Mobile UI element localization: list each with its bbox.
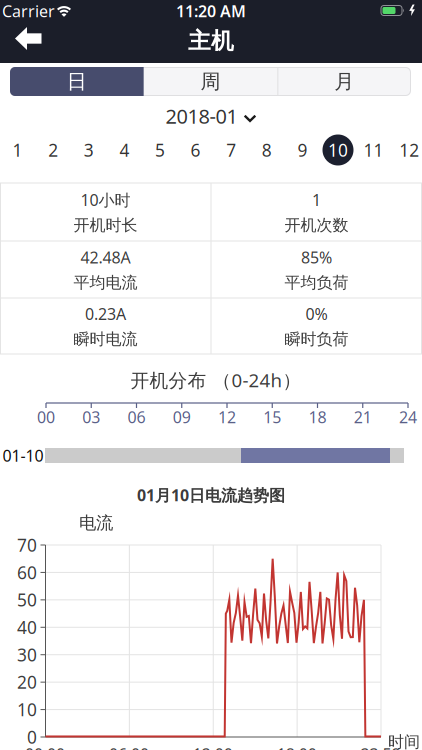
button[interactable]: 12 <box>392 133 422 167</box>
staticText: 11:20 AM <box>176 0 246 22</box>
staticText: 09 <box>173 406 191 428</box>
staticText: 12 <box>399 138 419 161</box>
button[interactable]: 7 <box>214 133 249 167</box>
button[interactable]: 3 <box>71 133 106 167</box>
staticText: 平均电流 <box>73 273 137 292</box>
staticText: 9 <box>297 138 307 161</box>
staticText: 0 <box>27 725 37 748</box>
staticText: 0% <box>305 303 327 324</box>
staticText: 06:00 <box>109 743 149 750</box>
button[interactable]: 1 <box>0 133 35 167</box>
button[interactable]: 周 <box>144 67 277 96</box>
staticText: 2 <box>48 138 58 161</box>
staticText: 主机 <box>188 27 234 55</box>
staticText: 日 <box>67 69 87 94</box>
staticText: 1 <box>312 189 321 210</box>
button[interactable]: 日 <box>10 67 144 96</box>
button[interactable]: 2 <box>36 133 71 167</box>
staticText: 平均负荷 <box>284 273 348 292</box>
staticText: 0.23A <box>85 303 126 324</box>
staticText: 85% <box>301 246 332 268</box>
staticText: 10 <box>328 138 348 161</box>
button[interactable]: 5 <box>142 133 178 167</box>
staticText: 开机分布 （0-24h） <box>130 368 301 392</box>
staticText: 30 <box>17 643 37 666</box>
staticText: 21 <box>354 406 372 428</box>
staticText: Carrier <box>2 0 55 22</box>
staticText: 开机次数 <box>284 215 348 235</box>
staticText: 4 <box>119 138 129 161</box>
staticText: 01月10日电流趋势图 <box>137 484 285 506</box>
staticText: 8 <box>262 138 272 161</box>
staticText: 15 <box>263 406 281 428</box>
staticText: 3 <box>84 138 94 161</box>
staticText: 00:00 <box>25 743 65 750</box>
staticText: 10 <box>17 698 37 721</box>
staticText: 01-10 <box>2 445 43 466</box>
staticText: 06 <box>127 406 145 428</box>
staticText: 12:00 <box>193 743 233 750</box>
staticText: 瞬时负荷 <box>284 329 348 349</box>
button[interactable]: 11 <box>356 133 391 167</box>
staticText: 月 <box>334 69 354 94</box>
button[interactable]: 9 <box>285 133 320 167</box>
staticText: 时间 <box>388 732 420 750</box>
button[interactable]: 6 <box>178 133 213 167</box>
staticText: 70 <box>17 533 37 556</box>
staticText: 18 <box>308 406 326 428</box>
button[interactable]: Back <box>0 0 56 63</box>
staticText: 11 <box>364 138 384 161</box>
staticText: 周 <box>200 69 220 94</box>
button[interactable]: 4 <box>107 133 142 167</box>
staticText: 42.48A <box>80 246 130 268</box>
staticText: 5 <box>155 138 165 161</box>
button[interactable]: 8 <box>249 133 284 167</box>
staticText: 60 <box>17 561 37 584</box>
button[interactable]: 2018-01 <box>165 104 256 128</box>
staticText: 20 <box>17 671 37 694</box>
staticText: 7 <box>226 138 236 161</box>
staticText: 23:59 <box>360 743 400 750</box>
staticText: 18:00 <box>277 743 317 750</box>
staticText: 电流 <box>79 512 113 534</box>
staticText: 03 <box>82 406 100 428</box>
staticText: 50 <box>17 588 37 611</box>
staticText: 24 <box>399 406 417 428</box>
staticText: 开机时长 <box>73 215 137 235</box>
staticText: 2018-01 <box>165 103 237 129</box>
staticText: 40 <box>17 616 37 639</box>
button[interactable]: 月 <box>277 67 411 96</box>
staticText: 1 <box>13 138 23 161</box>
staticText: 10小时 <box>80 189 130 210</box>
staticText: 00 <box>37 406 55 428</box>
staticText: 6 <box>191 138 201 161</box>
staticText: 12 <box>218 406 236 428</box>
staticText: 瞬时电流 <box>73 329 137 349</box>
button[interactable]: 10 <box>320 133 356 167</box>
